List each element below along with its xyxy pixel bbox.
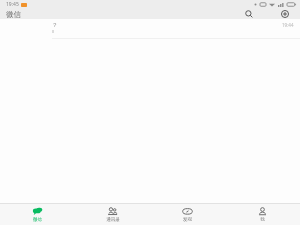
staticText: 微信	[6, 10, 21, 19]
button[interactable]: Add	[278, 9, 292, 19]
button[interactable]: Search	[242, 9, 256, 19]
button[interactable]: 通讯录	[75, 204, 150, 225]
staticText: 微信	[33, 217, 42, 223]
button[interactable]: 我	[225, 204, 300, 225]
staticText: 19:45	[6, 1, 19, 8]
staticText: 我	[260, 217, 265, 223]
button[interactable]: 微信	[0, 204, 75, 225]
staticText: 发现	[183, 217, 192, 223]
staticText: 19:44	[282, 22, 294, 28]
staticText: ？	[52, 21, 58, 29]
staticText: 通讯录	[106, 217, 120, 223]
button[interactable]: ？	[0, 19, 300, 39]
button[interactable]: 发现	[150, 204, 225, 225]
